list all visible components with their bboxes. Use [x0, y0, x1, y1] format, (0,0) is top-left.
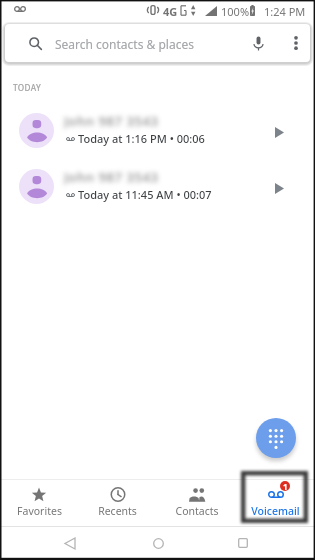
button[interactable]: More options: [283, 30, 309, 56]
button[interactable]: John 987 3543: [0, 103, 315, 159]
button[interactable]: Play voicemail: [264, 117, 294, 147]
button[interactable]: John 987 3543: [0, 159, 315, 215]
button[interactable]: 1: [236, 479, 315, 526]
staticText: 1: [283, 481, 288, 491]
staticText: Search contacts & places: [55, 36, 194, 52]
button[interactable]: Recents: [78, 479, 157, 526]
staticText: 100%: [221, 4, 250, 19]
button[interactable]: Recent apps: [231, 531, 255, 555]
button[interactable]: Contacts: [157, 479, 236, 526]
button[interactable]: Favorites: [0, 479, 78, 526]
button[interactable]: Voice search: [245, 30, 271, 56]
staticText: Voicemail: [251, 504, 300, 518]
staticText: TODAY: [13, 82, 42, 93]
button[interactable]: Play voicemail: [264, 173, 294, 203]
staticText: Recents: [98, 504, 137, 518]
staticText: John 987 3543: [64, 112, 159, 130]
staticText: Today at 11:45 AM • 00:07: [78, 187, 212, 202]
button[interactable]: Back: [58, 531, 82, 555]
staticText: 1:24 PM: [264, 4, 306, 19]
staticText: 4G: [163, 4, 178, 19]
button[interactable]: Search contacts & places: [5, 24, 310, 62]
staticText: Contacts: [175, 504, 219, 518]
staticText: John 987 3543: [64, 168, 159, 186]
button[interactable]: Dialpad: [256, 418, 296, 458]
staticText: Today at 1:16 PM • 00:06: [78, 131, 205, 146]
button[interactable]: Home: [146, 531, 170, 555]
staticText: Favorites: [17, 504, 62, 518]
